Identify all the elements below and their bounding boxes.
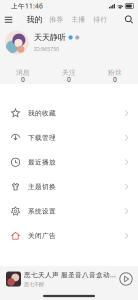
button[interactable]: 推荐	[48, 13, 65, 26]
button[interactable]: 粉丝	[92, 69, 138, 83]
staticText: 排行	[93, 15, 107, 24]
staticText: 0	[21, 75, 25, 84]
button[interactable]: 我的	[26, 13, 43, 26]
staticText: 0	[113, 75, 117, 84]
staticText: 天天静听	[34, 32, 66, 42]
staticText: 恶七不醉	[24, 281, 44, 288]
button[interactable]: 天天静听	[0, 27, 138, 58]
button[interactable]: 最近播放	[0, 150, 138, 174]
button[interactable]: 主题切换	[0, 174, 138, 199]
staticText: 系统设置	[28, 207, 56, 215]
staticText: 推荐	[49, 15, 63, 24]
staticText: 我的	[26, 15, 42, 24]
staticText: 关闭广告	[28, 232, 56, 240]
staticText: 恶七天人声 服圣音八音盒动听的天空之城)	[24, 270, 117, 279]
staticText: 关注	[62, 68, 76, 77]
staticText: 0	[67, 75, 71, 84]
staticText: 下载管理	[28, 134, 56, 142]
button[interactable]: 关注	[46, 69, 92, 83]
staticText: 最近播放	[28, 158, 56, 166]
button[interactable]: Search	[124, 13, 134, 26]
staticText: 消息	[16, 68, 30, 77]
staticText: 我的收藏	[28, 109, 56, 117]
staticText: 主题切换	[28, 183, 56, 191]
button[interactable]: 排行	[92, 13, 109, 26]
button[interactable]: 主播	[70, 13, 87, 26]
button[interactable]: 关闭广告	[0, 223, 138, 248]
button[interactable]: 下载管理	[0, 125, 138, 150]
button[interactable]: 我的收藏	[0, 101, 138, 125]
staticText: 主播	[71, 15, 85, 24]
staticText: 上午11:46	[11, 2, 43, 10]
staticText: ID:965750	[34, 45, 59, 52]
staticText: 粉丝	[108, 68, 122, 77]
button[interactable]: 恶七天人声 服圣音八音盒动听的天空之城)	[0, 266, 138, 292]
button[interactable]: Menu	[4, 13, 13, 26]
button[interactable]: 系统设置	[0, 199, 138, 223]
button[interactable]: 消息	[0, 69, 46, 83]
